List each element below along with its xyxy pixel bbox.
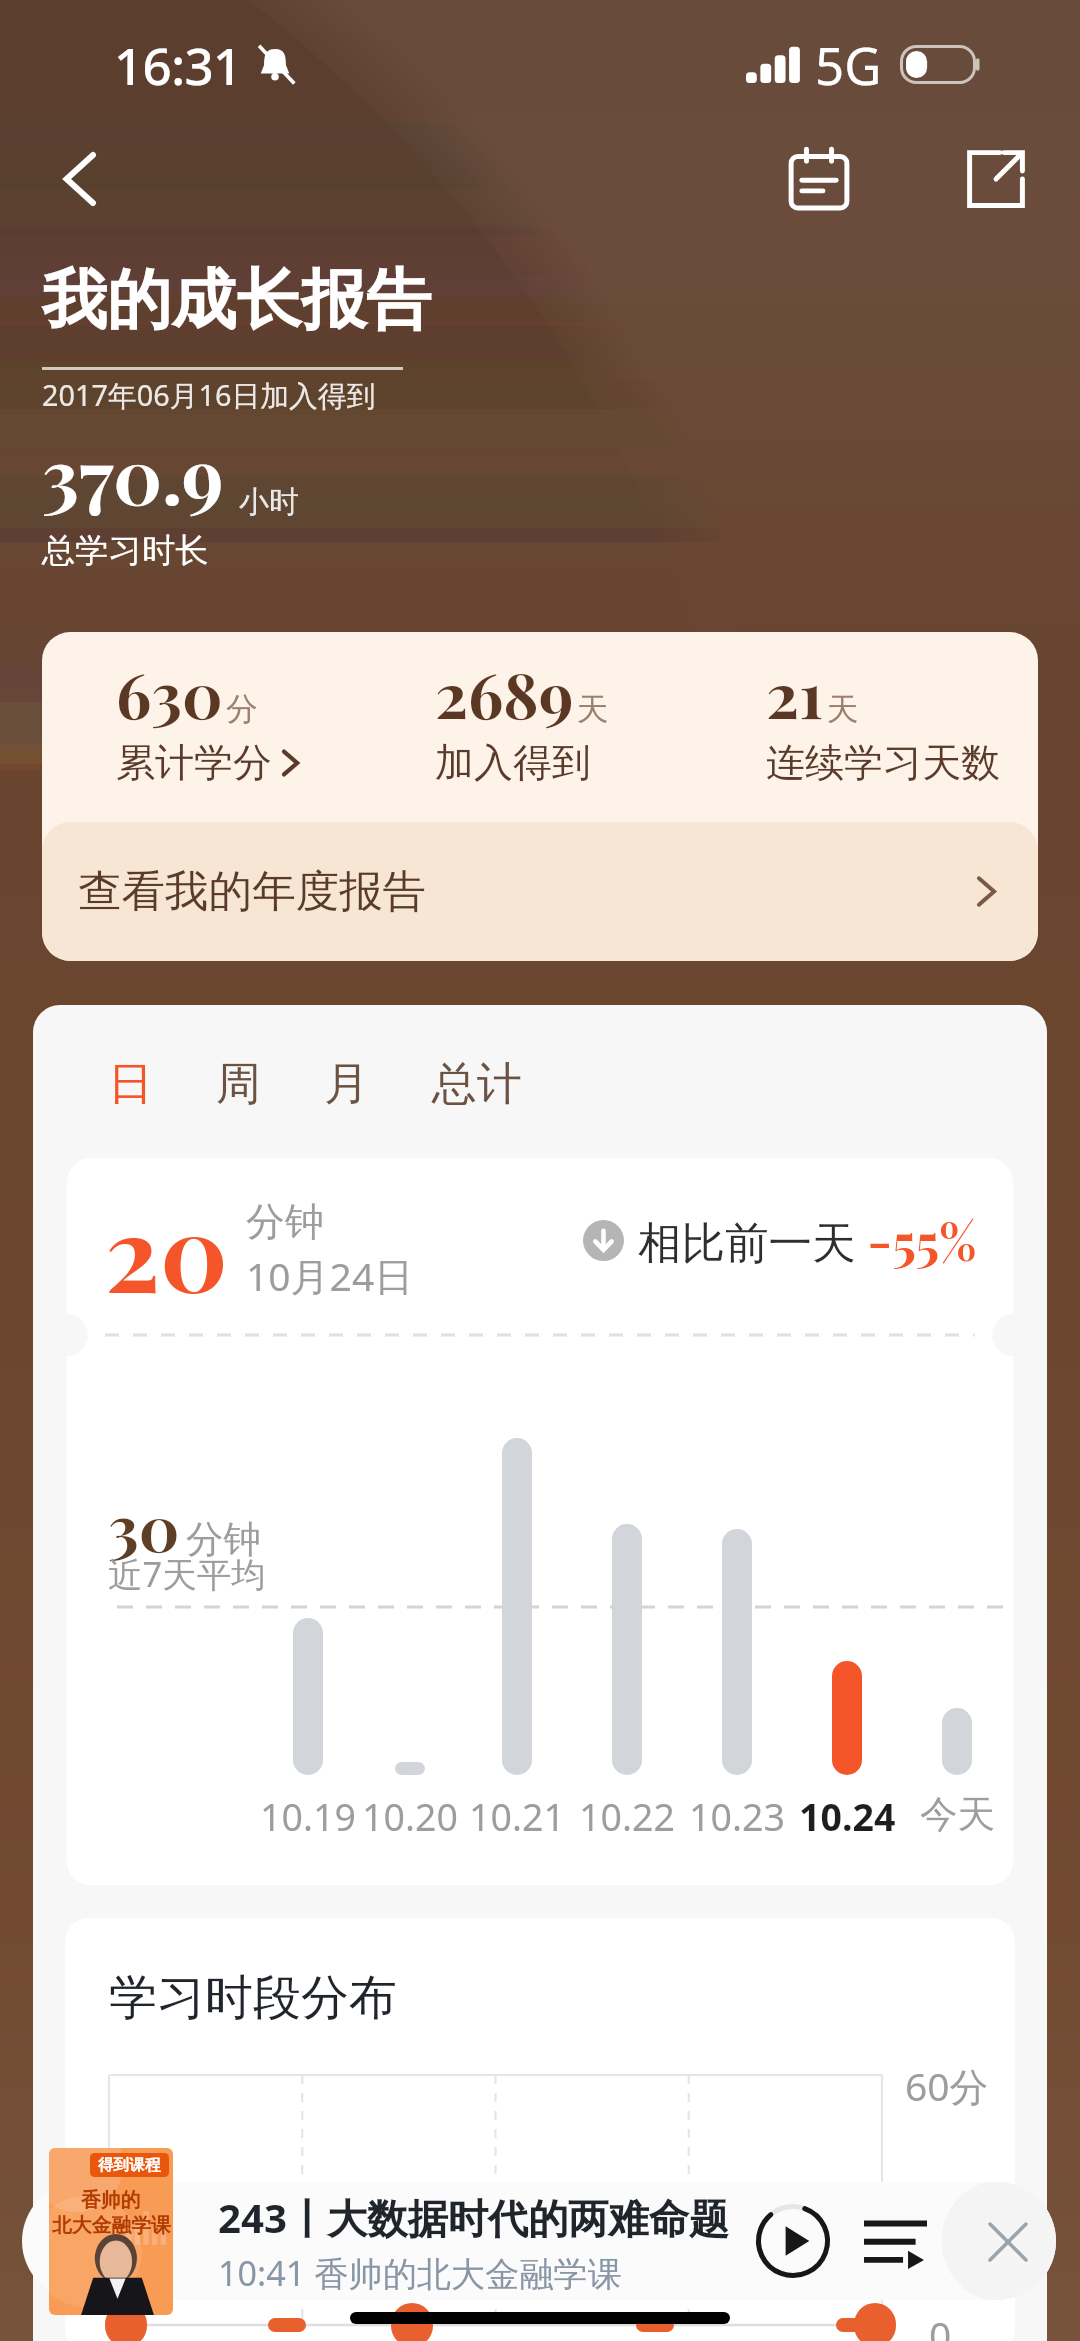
staticText: -55% [867,1206,977,1274]
staticText: 630 [116,651,223,735]
staticText: 小时 [239,483,299,521]
staticText: 月 [324,1056,369,1113]
staticText: 16:31 [114,30,242,99]
staticText: 370.9 [42,423,224,524]
staticText: 香帅的 [81,2188,141,2213]
button[interactable]: 总计 [432,1056,522,1113]
staticText: 0 [929,2308,952,2341]
staticText: 近7天平均 [108,1550,266,1597]
staticText: 今天 [920,1791,995,1838]
staticText: 连续学习天数 [766,738,1000,787]
staticText: 总学习时长 [42,530,209,572]
staticText: 得到课程 [98,2155,161,2175]
button[interactable]: Back [15,114,147,243]
staticText: 243丨大数据时代的两难命题 [218,2190,730,2245]
staticText: 10:41 香帅的北大金融学课 [218,2249,622,2296]
staticText: 北大金融学课 [52,2213,171,2238]
staticText: 2017年06月16日加入得到 [42,375,376,414]
staticText: 5G [815,30,882,99]
staticText: 20 [105,1179,228,1319]
staticText: 加入得到 [435,738,591,787]
staticText: 10月24日 [246,1249,414,1302]
button[interactable] [22,2182,1056,2300]
button[interactable]: Share [930,114,1062,243]
staticText: 10.22 [579,1791,675,1842]
staticText: 查看我的年度报告 [78,864,426,919]
staticText: 相比前一天 [638,1211,867,1270]
staticText: 分 [226,690,258,730]
button[interactable]: 月 [324,1056,369,1113]
staticText: 总计 [432,1056,522,1113]
button[interactable]: 查看我的年度报告 [42,822,1038,961]
button[interactable]: Records [753,114,885,243]
staticText: 10.19 [260,1791,356,1842]
staticText: 天 [577,690,609,730]
staticText: 分钟 [246,1197,324,1246]
staticText: 我的成长报告 [42,260,431,342]
staticText: 学习时段分布 [109,1968,397,2028]
staticText: 累计学分 [116,738,272,787]
staticText: 30 [108,1484,180,1568]
staticText: 天 [827,690,859,730]
staticText: 10.24 [799,1791,896,1842]
staticText: 2689 [435,651,574,735]
button[interactable]: Close [966,2200,1050,2284]
button[interactable]: 日 [108,1056,153,1113]
staticText: 10.21 [469,1791,565,1842]
staticText: 分钟 [186,1516,261,1563]
button[interactable]: Playlist [867,2212,924,2269]
button[interactable]: Play [756,2204,830,2278]
staticText: 10.20 [362,1791,458,1842]
staticText: 周 [216,1056,261,1113]
button[interactable]: 周 [216,1056,261,1113]
staticText: 21 [766,651,824,735]
staticText: 10.23 [689,1791,785,1842]
staticText: 60分 [905,2059,989,2112]
staticText: 日 [108,1056,153,1113]
